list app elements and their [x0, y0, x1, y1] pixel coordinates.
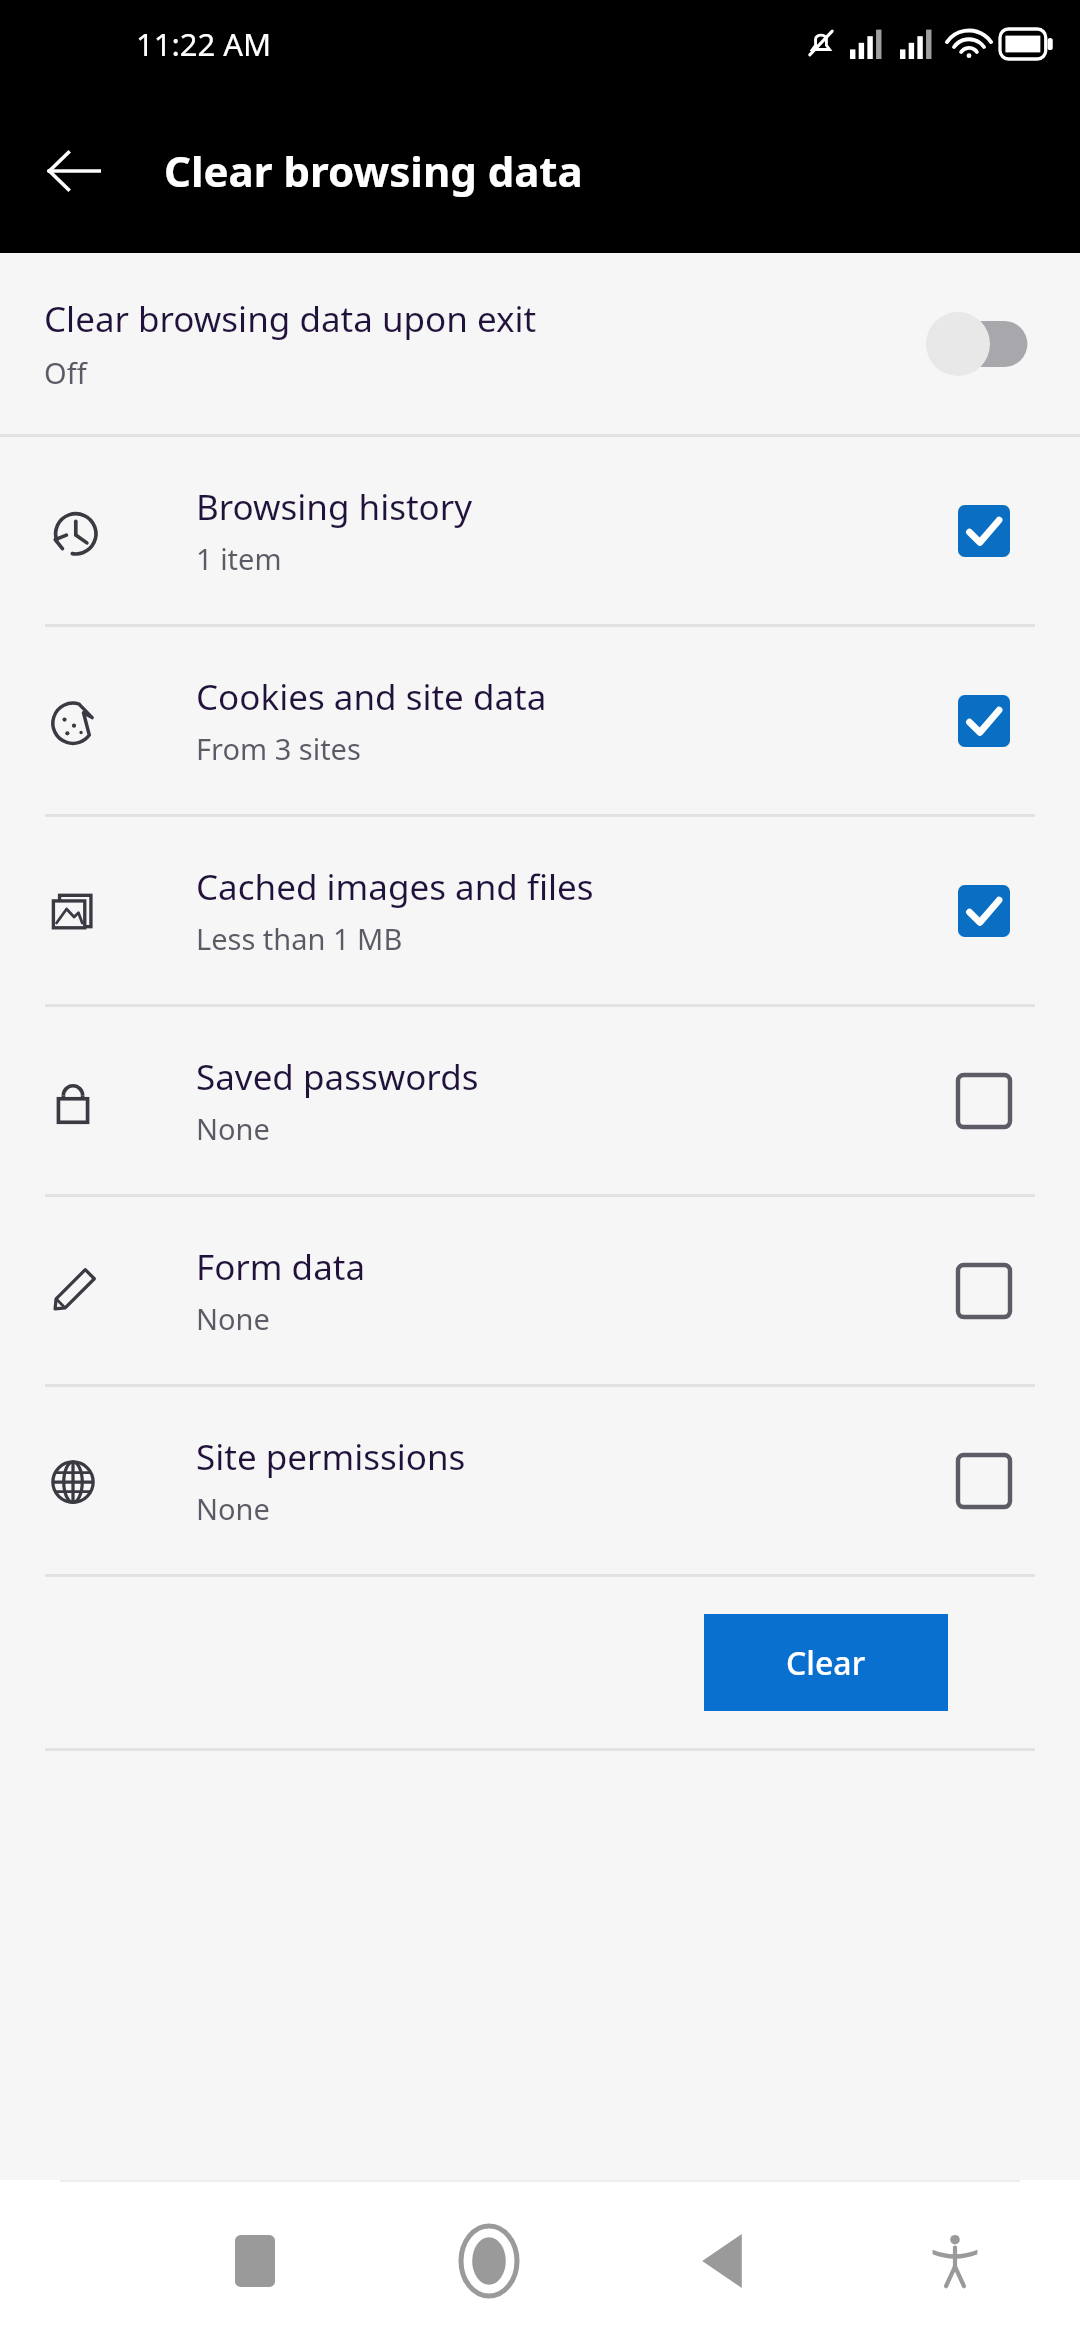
staticText: Clear	[786, 1641, 866, 1685]
staticText: None	[196, 1489, 270, 1528]
button[interactable]: Clear	[704, 1614, 948, 1711]
staticText: Browsing history	[196, 483, 473, 531]
staticText: Clear browsing data	[164, 142, 583, 199]
staticText: Cached images and files	[196, 863, 594, 911]
staticText: Form data	[196, 1243, 366, 1291]
staticText: Cookies and site data	[196, 673, 547, 721]
button[interactable]: Accessibility	[890, 2196, 1020, 2326]
button[interactable]: Saved passwords	[0, 1007, 1080, 1194]
staticText: None	[196, 1299, 270, 1338]
staticText: 11:22 AM	[136, 23, 272, 65]
button[interactable]: Form data	[0, 1197, 1080, 1384]
button[interactable]: Back	[26, 123, 122, 219]
button[interactable]: Home	[424, 2196, 554, 2326]
button[interactable]: Browsing history	[0, 437, 1080, 624]
staticText: Off	[44, 353, 87, 392]
staticText: 1 item	[196, 539, 282, 578]
staticText: Saved passwords	[196, 1053, 479, 1101]
staticText: Less than 1 MB	[196, 919, 403, 958]
staticText: None	[196, 1109, 270, 1148]
button[interactable]: Recents	[190, 2196, 320, 2326]
staticText: From 3 sites	[196, 729, 361, 768]
button[interactable]: Site permissions	[0, 1387, 1080, 1574]
button[interactable]: Cached images and files	[0, 817, 1080, 1004]
button[interactable]: Clear browsing data upon exit	[0, 253, 1080, 434]
staticText: Site permissions	[196, 1433, 466, 1481]
button[interactable]: Back	[657, 2196, 787, 2326]
staticText: Clear browsing data upon exit	[44, 295, 537, 343]
button[interactable]: Cookies and site data	[0, 627, 1080, 814]
